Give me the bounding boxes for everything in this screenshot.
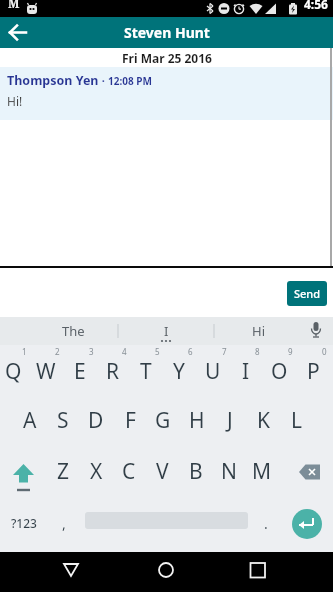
staticText: ,: [62, 514, 66, 533]
button[interactable]: O: [262, 356, 296, 386]
staticText: I: [242, 357, 250, 386]
button[interactable]: B: [179, 456, 213, 486]
button[interactable]: U: [196, 356, 230, 386]
staticText: W: [36, 357, 56, 386]
button[interactable]: J: [213, 405, 247, 435]
staticText: Y: [173, 357, 185, 386]
button[interactable]: X: [79, 456, 113, 486]
staticText: R: [106, 357, 120, 386]
button[interactable]: Z: [46, 456, 80, 486]
staticText: X: [90, 457, 103, 486]
button[interactable]: Y: [162, 356, 196, 386]
staticText: F: [125, 406, 136, 435]
staticText: C: [122, 457, 136, 486]
staticText: B: [189, 457, 203, 486]
staticText: U: [205, 357, 221, 386]
button[interactable]: E: [63, 356, 97, 386]
staticText: Steven Hunt: [124, 23, 210, 42]
staticText: Thompson Yen: [7, 72, 99, 89]
staticText: O: [271, 357, 288, 386]
staticText: I: [164, 322, 169, 340]
staticText: Hi: [252, 322, 265, 340]
staticText: 2: [55, 346, 60, 357]
staticText: H: [189, 406, 205, 435]
staticText: M: [252, 457, 272, 486]
button[interactable]: ,: [47, 508, 81, 538]
staticText: 5: [155, 346, 160, 357]
button[interactable]: [146, 552, 186, 592]
staticText: The: [62, 322, 85, 340]
staticText: V: [156, 457, 169, 486]
staticText: P: [307, 357, 320, 386]
button[interactable]: ?123: [7, 508, 41, 538]
staticText: D: [88, 406, 104, 435]
staticText: 0: [322, 346, 327, 357]
staticText: M: [8, 0, 20, 11]
staticText: 7: [222, 346, 227, 357]
button[interactable]: C: [112, 456, 146, 486]
staticText: Fri Mar 25 2016: [122, 50, 212, 66]
button[interactable]: G: [146, 405, 180, 435]
staticText: Hi!: [7, 93, 23, 109]
button[interactable]: T: [129, 356, 163, 386]
staticText: G: [155, 406, 171, 435]
staticText: ·: [99, 73, 108, 88]
button[interactable]: V: [145, 456, 179, 486]
button[interactable]: M: [245, 456, 279, 486]
button[interactable]: [0, 17, 40, 48]
staticText: 12:08 PM: [108, 74, 152, 88]
button[interactable]: L: [280, 405, 314, 435]
button[interactable]: [51, 552, 91, 592]
staticText: J: [227, 406, 233, 435]
button[interactable]: .: [249, 508, 283, 538]
button[interactable]: Send: [287, 281, 327, 306]
button[interactable]: [238, 552, 278, 592]
staticText: 8: [255, 346, 260, 357]
staticText: K: [257, 406, 270, 435]
button[interactable]: D: [79, 405, 113, 435]
button[interactable]: W: [29, 356, 63, 386]
staticText: 1: [22, 346, 27, 357]
button[interactable]: P: [296, 356, 330, 386]
button[interactable]: H: [180, 405, 214, 435]
button[interactable]: Thompson Yen: [0, 67, 333, 120]
button[interactable]: I: [118, 317, 214, 345]
staticText: E: [74, 357, 86, 386]
staticText: Z: [57, 457, 70, 486]
staticText: 4:56: [304, 0, 328, 12]
staticText: .: [264, 514, 268, 533]
button[interactable]: K: [246, 405, 280, 435]
button[interactable]: F: [113, 405, 147, 435]
button[interactable]: S: [46, 405, 80, 435]
button[interactable]: Hi: [214, 317, 302, 345]
button[interactable]: [4, 456, 42, 488]
button[interactable]: [292, 508, 322, 538]
staticText: T: [140, 357, 152, 386]
staticText: ?123: [11, 515, 37, 531]
button[interactable]: Q: [0, 356, 30, 386]
staticText: L: [291, 406, 303, 435]
staticText: 6: [188, 346, 193, 357]
staticText: 9: [288, 346, 293, 357]
staticText: Send: [294, 286, 321, 301]
staticText: A: [23, 406, 37, 435]
staticText: 4: [122, 346, 127, 357]
staticText: 3: [89, 346, 94, 357]
button[interactable]: N: [212, 456, 246, 486]
button[interactable]: The: [28, 317, 118, 345]
staticText: N: [221, 457, 237, 486]
staticText: Q: [5, 357, 22, 386]
button[interactable]: R: [96, 356, 130, 386]
staticText: S: [57, 406, 69, 435]
button[interactable]: I: [229, 356, 263, 386]
button[interactable]: A: [13, 405, 47, 435]
